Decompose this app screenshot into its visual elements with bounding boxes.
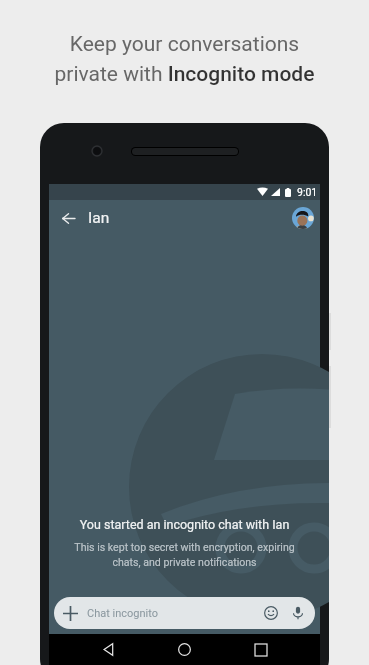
button[interactable]: Back	[94, 635, 123, 664]
button[interactable]: Voice input	[286, 601, 310, 625]
button[interactable]: Home	[170, 635, 199, 664]
staticText: Keep your conversations private with Inc…	[0, 32, 369, 86]
staticText: Chat incognito	[87, 607, 159, 620]
staticText: This is kept top secret with encryption,…	[63, 541, 306, 569]
staticText: Ian	[88, 209, 110, 227]
button[interactable]: Back	[49, 199, 88, 237]
button[interactable]: Chat incognito	[54, 597, 315, 629]
button[interactable]: Emoji	[259, 601, 283, 625]
button[interactable]: Recent apps	[246, 635, 275, 664]
staticText: 9:01	[297, 186, 318, 198]
staticText: You started an incognito chat with Ian	[49, 517, 320, 532]
button[interactable]: Profile picture	[292, 207, 314, 229]
